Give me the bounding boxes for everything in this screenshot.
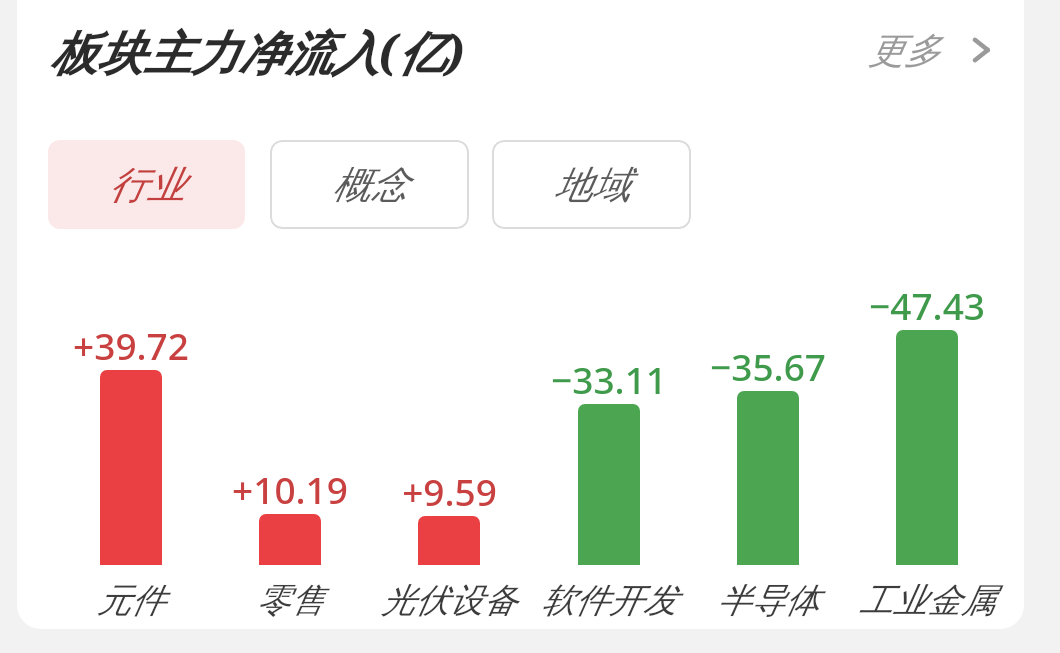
- staticText: +39.72: [73, 320, 189, 366]
- button[interactable]: 半导体 −35.67: [737, 391, 799, 565]
- staticText: −33.11: [551, 354, 667, 400]
- staticText: 板块主力净流入(亿): [50, 20, 464, 84]
- button[interactable]: 零售 +10.19: [259, 514, 321, 565]
- staticText: 更多: [868, 28, 940, 73]
- staticText: 光伏设备: [381, 579, 517, 622]
- staticText: −35.67: [710, 341, 826, 387]
- button[interactable]: 地域: [492, 140, 691, 229]
- button[interactable]: 光伏设备 +9.59: [418, 516, 480, 565]
- staticText: −47.43: [869, 280, 985, 326]
- staticText: +10.19: [232, 464, 348, 510]
- button[interactable]: 更多: [868, 22, 1008, 78]
- button[interactable]: 概念: [270, 140, 469, 229]
- staticText: 地域: [554, 161, 630, 209]
- button[interactable]: 元件 +39.72: [100, 370, 162, 565]
- staticText: 零售: [256, 579, 324, 622]
- button[interactable]: 工业金属 −47.43: [896, 330, 958, 565]
- staticText: 软件开发: [541, 579, 677, 622]
- button[interactable]: 软件开发 −33.11: [578, 404, 640, 565]
- staticText: 行业: [109, 161, 185, 209]
- staticText: 概念: [332, 161, 408, 209]
- staticText: +9.59: [402, 466, 497, 512]
- staticText: 工业金属: [859, 579, 995, 622]
- staticText: 元件: [97, 579, 165, 622]
- staticText: 半导体: [717, 579, 819, 622]
- button[interactable]: 行业: [48, 140, 245, 229]
